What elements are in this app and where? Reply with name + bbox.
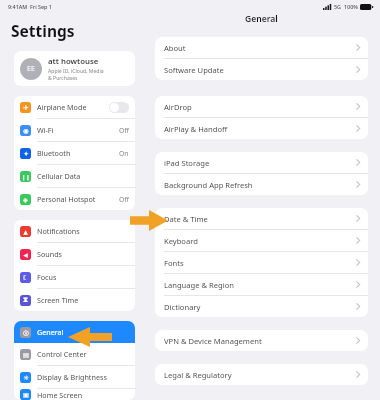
- button[interactable]: Keyboard: [155, 230, 368, 252]
- staticText: 100%: [344, 3, 358, 10]
- button[interactable]: ☾: [14, 266, 135, 288]
- staticText: Home Screen: [37, 390, 83, 400]
- staticText: Legal & Regulatory: [164, 370, 232, 380]
- button[interactable]: Date & Time: [155, 208, 368, 230]
- staticText: On: [119, 149, 129, 158]
- button[interactable]: Language & Region: [155, 274, 368, 296]
- staticText: 5G: [334, 3, 342, 10]
- staticText: Dictionary: [164, 302, 201, 312]
- staticText: Sounds: [37, 249, 63, 259]
- staticText: ✈: [23, 104, 29, 112]
- button[interactable]: ❙❙: [14, 165, 135, 187]
- button[interactable]: ✦: [14, 142, 135, 164]
- staticText: Keyboard: [164, 236, 198, 246]
- staticText: Software Update: [164, 65, 224, 75]
- button[interactable]: iPad Storage: [155, 152, 368, 174]
- staticText: Display & Brightness: [37, 372, 107, 382]
- staticText: ⧗: [23, 297, 28, 304]
- button[interactable]: AirPlay & Handoff: [155, 118, 368, 139]
- staticText: ▲: [23, 229, 28, 235]
- staticText: att howtouse: [48, 56, 99, 67]
- button[interactable]: ◀: [14, 243, 135, 265]
- staticText: Date & Time: [164, 214, 208, 224]
- staticText: Apple ID, iCloud, Media & Purchases: [48, 68, 104, 81]
- staticText: Cellular Data: [37, 171, 81, 181]
- staticText: ◉: [23, 127, 29, 134]
- button[interactable]: Dictionary: [155, 296, 368, 317]
- button[interactable]: Legal & Regulatory: [155, 364, 368, 385]
- other: Pointer to Date & Time: [130, 210, 168, 231]
- staticText: ◈: [23, 196, 28, 203]
- staticText: Language & Region: [164, 280, 234, 290]
- staticText: ◎: [23, 329, 29, 337]
- staticText: iPad Storage: [164, 158, 210, 168]
- staticText: Notifications: [37, 226, 80, 236]
- staticText: Screen Time: [37, 295, 79, 305]
- staticText: ☾: [22, 274, 29, 282]
- staticText: General: [37, 327, 64, 337]
- staticText: ▣: [23, 391, 29, 398]
- staticText: 9:41AM Fri Sep 1: [8, 3, 52, 10]
- staticText: Background App Refresh: [164, 180, 253, 190]
- button[interactable]: ▲: [14, 220, 135, 242]
- staticText: AirDrop: [164, 102, 192, 112]
- staticText: ❙❙: [21, 174, 30, 180]
- staticText: Personal Hotspot: [37, 194, 96, 204]
- button[interactable]: ✳: [14, 366, 135, 388]
- button[interactable]: ◉: [14, 119, 135, 141]
- button[interactable]: ▤: [14, 343, 135, 365]
- staticText: Fonts: [164, 258, 184, 268]
- staticText: VPN & Device Management: [164, 336, 262, 346]
- button[interactable]: ◎: [14, 321, 135, 343]
- staticText: ✳: [23, 374, 29, 381]
- button[interactable]: AirDrop: [155, 96, 368, 118]
- staticText: General: [245, 13, 278, 25]
- staticText: ◀: [23, 252, 28, 258]
- button[interactable]: Software Update: [155, 59, 368, 80]
- staticText: ✦: [23, 150, 29, 157]
- staticText: Control Center: [37, 349, 87, 359]
- staticText: Settings: [11, 20, 75, 41]
- staticText: Focus: [37, 272, 57, 282]
- button[interactable]: VPN & Device Management: [155, 330, 368, 351]
- staticText: Bluetooth: [37, 148, 71, 158]
- staticText: Airplane Mode: [37, 102, 87, 112]
- button[interactable]: ◈: [14, 188, 135, 210]
- staticText: Off: [119, 126, 129, 135]
- button[interactable]: ✈: [14, 96, 135, 118]
- button[interactable]: Fonts: [155, 252, 368, 274]
- staticText: EE: [27, 64, 35, 74]
- button[interactable]: EE: [14, 51, 135, 86]
- button[interactable]: ▣: [14, 389, 135, 400]
- button[interactable]: About: [155, 37, 368, 59]
- staticText: About: [164, 43, 186, 53]
- staticText: ▤: [23, 351, 29, 358]
- staticText: AirPlay & Handoff: [164, 124, 228, 134]
- button[interactable]: ⧗: [14, 289, 135, 311]
- button[interactable]: Background App Refresh: [155, 174, 368, 195]
- other: Pointer to General: [68, 327, 112, 347]
- staticText: Wi-Fi: [37, 125, 54, 135]
- staticText: Off: [119, 195, 129, 204]
